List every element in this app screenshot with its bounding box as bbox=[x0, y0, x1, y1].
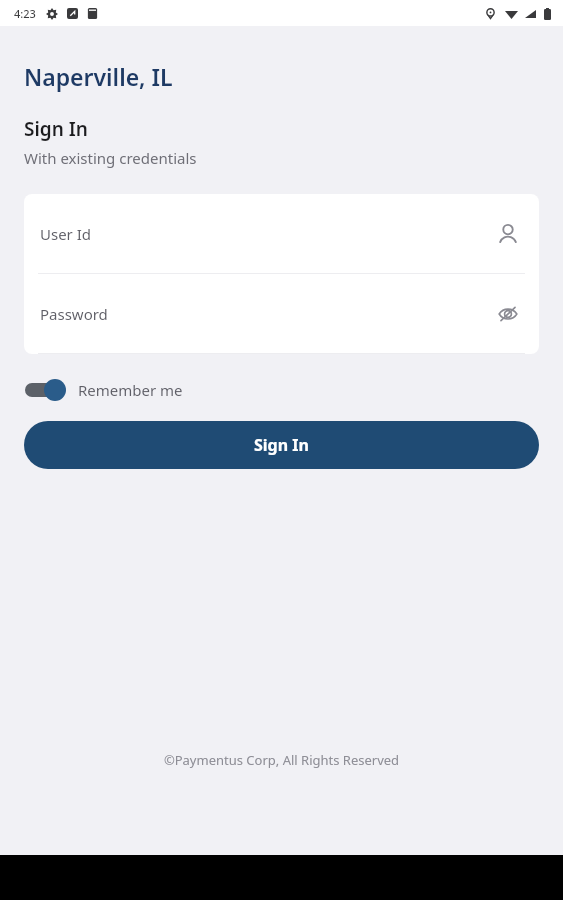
staticText: Password bbox=[40, 304, 491, 324]
staticText: User Id bbox=[40, 224, 491, 244]
staticText: With existing credentials bbox=[24, 148, 197, 168]
staticText: Sign In bbox=[254, 434, 309, 456]
staticText: Sign In bbox=[24, 116, 88, 142]
staticText: ©Paymentus Corp, All Rights Reserved bbox=[0, 751, 563, 769]
staticText: Naperville, IL bbox=[24, 61, 173, 92]
button[interactable]: Show password bbox=[491, 297, 525, 331]
button[interactable]: Remember me bbox=[24, 378, 183, 402]
button[interactable]: User Id bbox=[24, 194, 539, 274]
staticText: 4:23 bbox=[14, 6, 36, 21]
staticText: Remember me bbox=[78, 380, 183, 400]
button[interactable]: User id bbox=[491, 217, 525, 251]
button[interactable]: Sign In bbox=[24, 421, 539, 469]
button[interactable]: Password bbox=[24, 274, 539, 354]
